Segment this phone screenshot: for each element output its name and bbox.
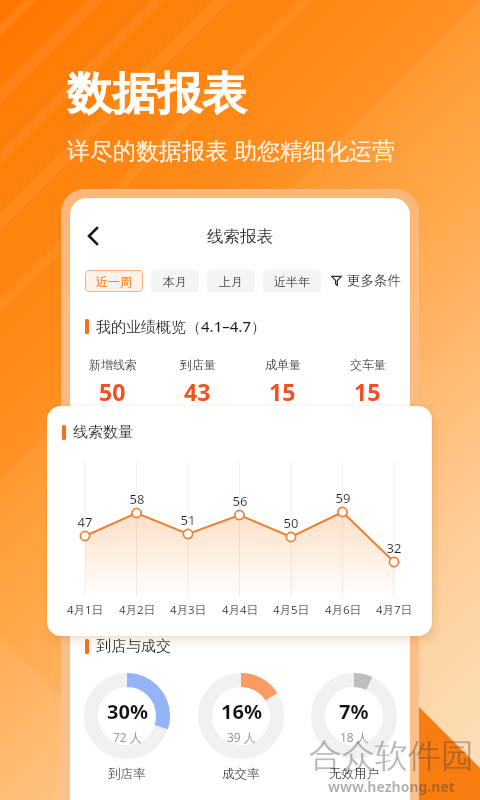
staticText: 线索数量: [73, 423, 133, 442]
staticText: 18 人: [340, 729, 369, 745]
staticText: 更多条件: [347, 272, 401, 289]
button[interactable]: 更多条件: [331, 269, 401, 292]
staticText: 59: [329, 489, 357, 507]
staticText: 32: [380, 539, 408, 557]
staticText: 4月4日: [215, 602, 265, 618]
staticText: 4月6日: [318, 602, 368, 618]
staticText: 我的业绩概览（4.1–4.7）: [96, 316, 266, 336]
staticText: 新增线索: [89, 357, 137, 372]
staticText: 16%: [221, 698, 262, 725]
staticText: www.hezhong.net: [328, 777, 455, 796]
staticText: 成单量: [265, 357, 301, 372]
staticText: 本月: [163, 274, 187, 289]
staticText: 近一周: [96, 274, 132, 289]
staticText: 47: [71, 513, 99, 531]
staticText: 线索报表: [207, 226, 273, 247]
staticText: 50: [277, 514, 305, 532]
staticText: 到店量: [180, 357, 216, 372]
staticText: 合众软件园: [309, 735, 474, 777]
staticText: 56: [226, 492, 254, 510]
staticText: 39 人: [227, 729, 256, 745]
staticText: 15: [269, 376, 296, 407]
staticText: 7%: [339, 698, 369, 725]
staticText: 无效用户: [329, 766, 379, 782]
staticText: 详尽的数据报表 助您精细化运营: [67, 134, 395, 165]
staticText: 数据报表: [67, 66, 247, 123]
staticText: 4月3日: [163, 602, 213, 618]
staticText: 43: [184, 376, 211, 407]
staticText: 4月7日: [369, 602, 419, 618]
staticText: 近半年: [274, 274, 310, 289]
staticText: 上月: [219, 274, 243, 289]
staticText: 交车量: [350, 357, 386, 372]
staticText: 4月5日: [266, 602, 316, 618]
staticText: 4月2日: [112, 602, 162, 618]
staticText: 51: [174, 511, 202, 529]
button[interactable]: 近一周: [85, 270, 143, 292]
staticText: 到店率: [108, 766, 146, 782]
staticText: 50: [99, 376, 126, 407]
staticText: 成交率: [222, 766, 260, 782]
staticText: 58: [123, 490, 151, 508]
staticText: 4月1日: [60, 602, 110, 618]
button[interactable]: 本月: [151, 270, 199, 292]
staticText: 15: [354, 376, 381, 407]
button[interactable]: 返回: [79, 222, 107, 250]
staticText: 30%: [107, 698, 148, 725]
button[interactable]: 近半年: [263, 270, 321, 292]
staticText: 72 人: [113, 729, 142, 745]
button[interactable]: 上月: [207, 270, 255, 292]
staticText: 到店与成交: [96, 637, 171, 656]
